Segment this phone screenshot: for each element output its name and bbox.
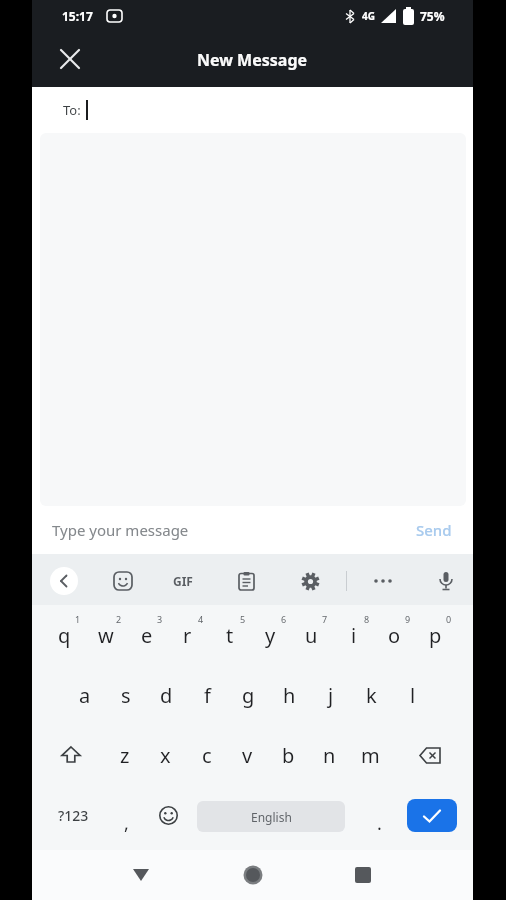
button[interactable]: c [186, 725, 227, 785]
staticText: p [429, 622, 442, 649]
button[interactable]: r [167, 605, 208, 665]
button[interactable] [363, 561, 403, 601]
button[interactable]: w [85, 605, 126, 665]
staticText: t [226, 622, 234, 649]
staticText: Type your message [52, 520, 189, 540]
staticText: 9 [405, 613, 411, 625]
button[interactable]: g [228, 665, 269, 725]
staticText: j [328, 682, 334, 709]
button[interactable] [407, 799, 457, 832]
button[interactable] [233, 855, 273, 895]
button[interactable] [426, 561, 466, 601]
staticText: 6 [281, 613, 287, 625]
button[interactable]: v [227, 725, 268, 785]
button[interactable]: d [146, 665, 187, 725]
button[interactable]: . [369, 793, 389, 853]
button[interactable] [226, 561, 266, 601]
button[interactable]: Send [416, 520, 452, 540]
button[interactable]: p [415, 605, 456, 665]
button[interactable]: English [197, 801, 345, 832]
button[interactable]: e [126, 605, 167, 665]
staticText: r [183, 622, 192, 649]
staticText: w [98, 622, 114, 649]
staticText: b [282, 742, 295, 769]
button[interactable]: GIF [163, 561, 203, 601]
button[interactable]: ?123 [49, 785, 97, 845]
button[interactable] [48, 725, 93, 785]
staticText: GIF [173, 573, 193, 589]
staticText: 75% [420, 8, 445, 24]
staticText: 4 [198, 613, 204, 625]
staticText: u [305, 622, 318, 649]
staticText: ?123 [58, 806, 89, 825]
button[interactable]: o [374, 605, 415, 665]
staticText: 0 [446, 613, 452, 625]
button[interactable]: y [250, 605, 291, 665]
button[interactable]: h [269, 665, 310, 725]
button[interactable] [343, 855, 383, 895]
staticText: o [388, 622, 401, 649]
button[interactable]: u [291, 605, 332, 665]
button[interactable]: To: [32, 87, 473, 133]
staticText: c [202, 742, 212, 769]
button[interactable]: t [209, 605, 250, 665]
staticText: l [410, 682, 416, 709]
staticText: To: [63, 101, 81, 119]
staticText: g [242, 682, 255, 709]
staticText: s [121, 682, 131, 709]
staticText: n [323, 742, 336, 769]
staticText: y [265, 622, 276, 649]
staticText: . [377, 811, 382, 836]
button[interactable]: Type your message [32, 506, 473, 554]
staticText: 1 [75, 613, 81, 625]
staticText: m [361, 742, 380, 769]
staticText: k [366, 682, 377, 709]
button[interactable] [103, 561, 143, 601]
button[interactable]: x [145, 725, 186, 785]
staticText: 7 [322, 613, 328, 625]
staticText: Send [416, 520, 452, 540]
staticText: h [283, 682, 296, 709]
button[interactable] [44, 561, 84, 601]
staticText: d [160, 682, 173, 709]
button[interactable]: s [105, 665, 146, 725]
staticText: English [251, 809, 292, 825]
button[interactable] [290, 561, 330, 601]
staticText: New Message [197, 49, 308, 71]
button[interactable] [408, 725, 453, 785]
button[interactable]: f [187, 665, 228, 725]
staticText: 4G [362, 9, 375, 23]
button[interactable]: , [116, 793, 136, 853]
button[interactable]: z [104, 725, 145, 785]
staticText: 5 [240, 613, 246, 625]
staticText: 3 [157, 613, 163, 625]
button[interactable]: b [268, 725, 309, 785]
staticText: 15:17 [62, 8, 93, 24]
staticText: z [120, 742, 130, 769]
staticText: , [124, 811, 129, 836]
button[interactable]: q [44, 605, 85, 665]
button[interactable]: j [310, 665, 351, 725]
staticText: 8 [364, 613, 370, 625]
button[interactable]: n [309, 725, 350, 785]
staticText: q [58, 622, 71, 649]
staticText: 2 [116, 613, 122, 625]
staticText: f [204, 682, 211, 709]
staticText: a [79, 682, 91, 709]
button[interactable] [148, 785, 188, 845]
staticText: e [141, 622, 153, 649]
button[interactable]: k [351, 665, 392, 725]
button[interactable] [52, 41, 88, 77]
button[interactable]: m [350, 725, 391, 785]
button[interactable]: l [392, 665, 433, 725]
button[interactable] [121, 855, 161, 895]
button[interactable]: i [333, 605, 374, 665]
staticText: x [160, 742, 171, 769]
staticText: v [242, 742, 253, 769]
staticText: i [351, 622, 357, 649]
button[interactable]: a [64, 665, 105, 725]
